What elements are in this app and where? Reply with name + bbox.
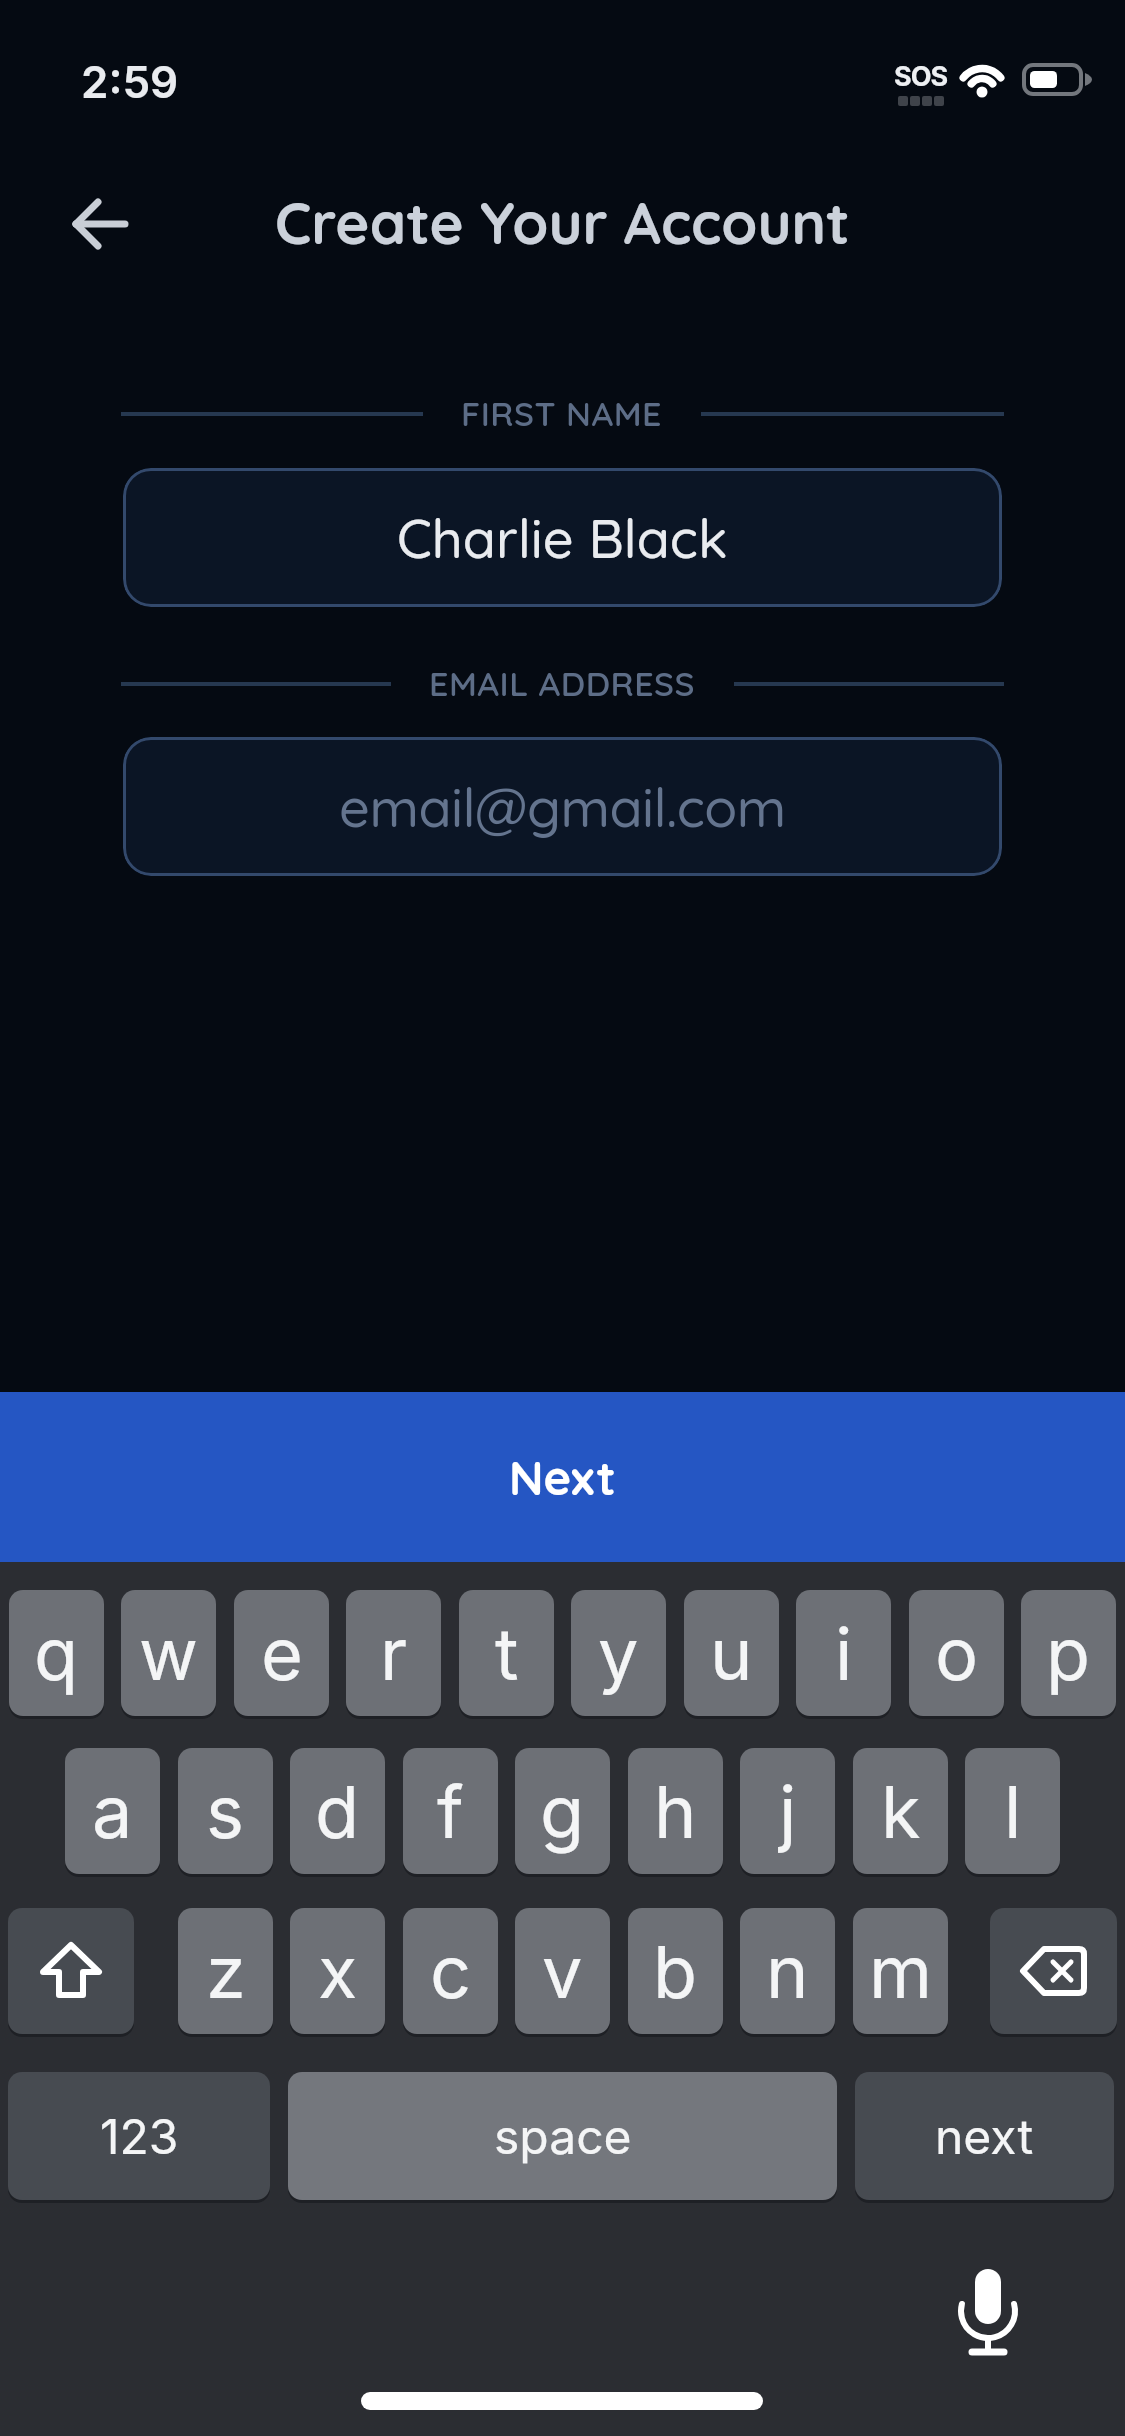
button[interactable]: y	[571, 1590, 666, 1716]
staticText: space	[494, 2107, 632, 2165]
staticText: a	[92, 1768, 133, 1855]
button[interactable]: 123	[8, 2072, 270, 2200]
button[interactable]: a	[65, 1748, 160, 1874]
staticText: 2:59	[81, 55, 179, 108]
staticText: s	[206, 1768, 245, 1855]
button[interactable]: b	[628, 1908, 723, 2034]
button[interactable]: t	[459, 1590, 554, 1716]
staticText: z	[206, 1928, 246, 2015]
button[interactable]	[8, 1908, 134, 2034]
staticText: c	[430, 1928, 472, 2015]
staticText: EMAIL ADDRESS	[429, 662, 696, 705]
button[interactable]	[990, 1908, 1117, 2034]
staticText: u	[710, 1610, 753, 1697]
button[interactable]: h	[628, 1748, 723, 1874]
button[interactable]: w	[121, 1590, 216, 1716]
button[interactable]: next	[855, 2072, 1114, 2200]
button[interactable]: m	[853, 1908, 948, 2034]
staticText: FIRST NAME	[461, 392, 663, 435]
button[interactable]: o	[909, 1590, 1004, 1716]
button[interactable]: p	[1021, 1590, 1116, 1716]
staticText: l	[1004, 1768, 1022, 1855]
staticText: n	[766, 1928, 809, 2015]
staticText: SOS	[894, 60, 948, 93]
button[interactable]: Charlie Black	[123, 468, 1002, 607]
staticText: email@gmail.com	[339, 773, 786, 841]
staticText: o	[935, 1610, 979, 1697]
button[interactable]: i	[796, 1590, 891, 1716]
staticText: h	[654, 1768, 697, 1855]
staticText: x	[318, 1928, 358, 2015]
staticText: next	[935, 2107, 1034, 2165]
button[interactable]: space	[288, 2072, 837, 2200]
button[interactable]: j	[740, 1748, 835, 1874]
staticText: e	[261, 1610, 303, 1697]
staticText: m	[869, 1928, 933, 2015]
button[interactable]: f	[403, 1748, 498, 1874]
button[interactable]: n	[740, 1908, 835, 2034]
button[interactable]: r	[346, 1590, 441, 1716]
staticText: p	[1046, 1610, 1091, 1697]
button[interactable]: g	[515, 1748, 610, 1874]
staticText: r	[380, 1610, 408, 1697]
button[interactable]: email@gmail.com	[123, 737, 1002, 876]
staticText: q	[34, 1610, 79, 1697]
button[interactable]: e	[234, 1590, 329, 1716]
button[interactable]: k	[853, 1748, 948, 1874]
button[interactable]: z	[178, 1908, 273, 2034]
button[interactable]	[938, 2246, 1038, 2376]
staticText: 123	[100, 2107, 179, 2165]
staticText: f	[437, 1768, 464, 1855]
button[interactable]: s	[178, 1748, 273, 1874]
staticText: g	[540, 1768, 585, 1855]
button[interactable]: x	[290, 1908, 385, 2034]
button[interactable]: u	[684, 1590, 779, 1716]
staticText: d	[315, 1768, 360, 1855]
staticText: b	[653, 1928, 698, 2015]
staticText: i	[835, 1610, 853, 1697]
button[interactable]: c	[403, 1908, 498, 2034]
button[interactable]: v	[515, 1908, 610, 2034]
staticText: t	[495, 1610, 519, 1697]
staticText: Next	[509, 1448, 616, 1507]
staticText: j	[779, 1768, 797, 1855]
staticText: v	[542, 1928, 583, 2015]
staticText: k	[881, 1768, 921, 1855]
button[interactable]: d	[290, 1748, 385, 1874]
button[interactable]: l	[965, 1748, 1060, 1874]
button[interactable]	[60, 185, 140, 263]
staticText: y	[598, 1610, 639, 1697]
staticText: Create Your Account	[275, 186, 850, 259]
staticText: w	[139, 1610, 198, 1697]
button[interactable]: Next	[0, 1392, 1125, 1562]
button[interactable]: q	[9, 1590, 104, 1716]
staticText: Charlie Black	[397, 504, 728, 572]
